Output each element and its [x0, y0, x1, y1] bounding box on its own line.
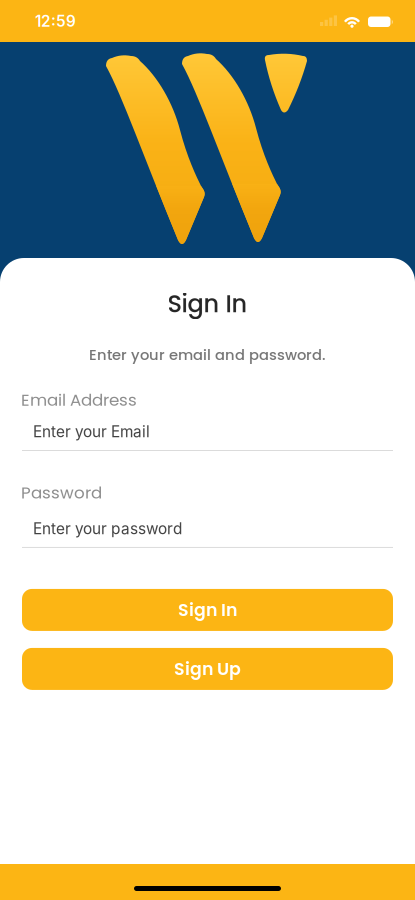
staticText: Enter your password — [33, 519, 182, 538]
button[interactable]: Enter your password — [0, 504, 393, 548]
staticText: Enter your email and password. — [89, 345, 326, 365]
staticText: Sign In — [178, 598, 237, 622]
staticText: Enter your Email — [33, 422, 150, 441]
button[interactable]: Sign In — [22, 589, 393, 631]
staticText: 12:59 — [35, 12, 76, 31]
staticText: Password — [21, 481, 102, 504]
button[interactable]: Enter your Email — [0, 411, 393, 451]
staticText: Email Address — [21, 388, 137, 411]
staticText: Sign In — [167, 287, 247, 321]
button[interactable]: Sign Up — [22, 648, 393, 690]
staticText: Sign Up — [174, 657, 241, 681]
